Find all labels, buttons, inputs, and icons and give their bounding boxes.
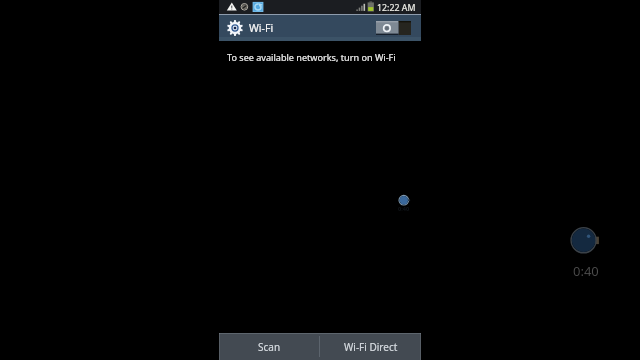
staticText: 0:40 xyxy=(398,205,410,213)
staticText: 0:40 xyxy=(573,262,599,280)
staticText: Wi-Fi xyxy=(249,21,274,35)
button[interactable]: Wi-Fi Direct xyxy=(320,333,421,360)
button[interactable]: Turn Wi-Fi on xyxy=(376,21,411,35)
staticText: Wi-Fi Direct xyxy=(344,340,398,354)
button[interactable]: Scan xyxy=(219,333,319,360)
button[interactable]: Wi-Fi xyxy=(219,14,278,41)
staticText: To see available networks, turn on Wi-Fi xyxy=(227,51,396,63)
staticText: 12:22 AM xyxy=(377,2,416,14)
staticText: Scan xyxy=(258,340,281,354)
